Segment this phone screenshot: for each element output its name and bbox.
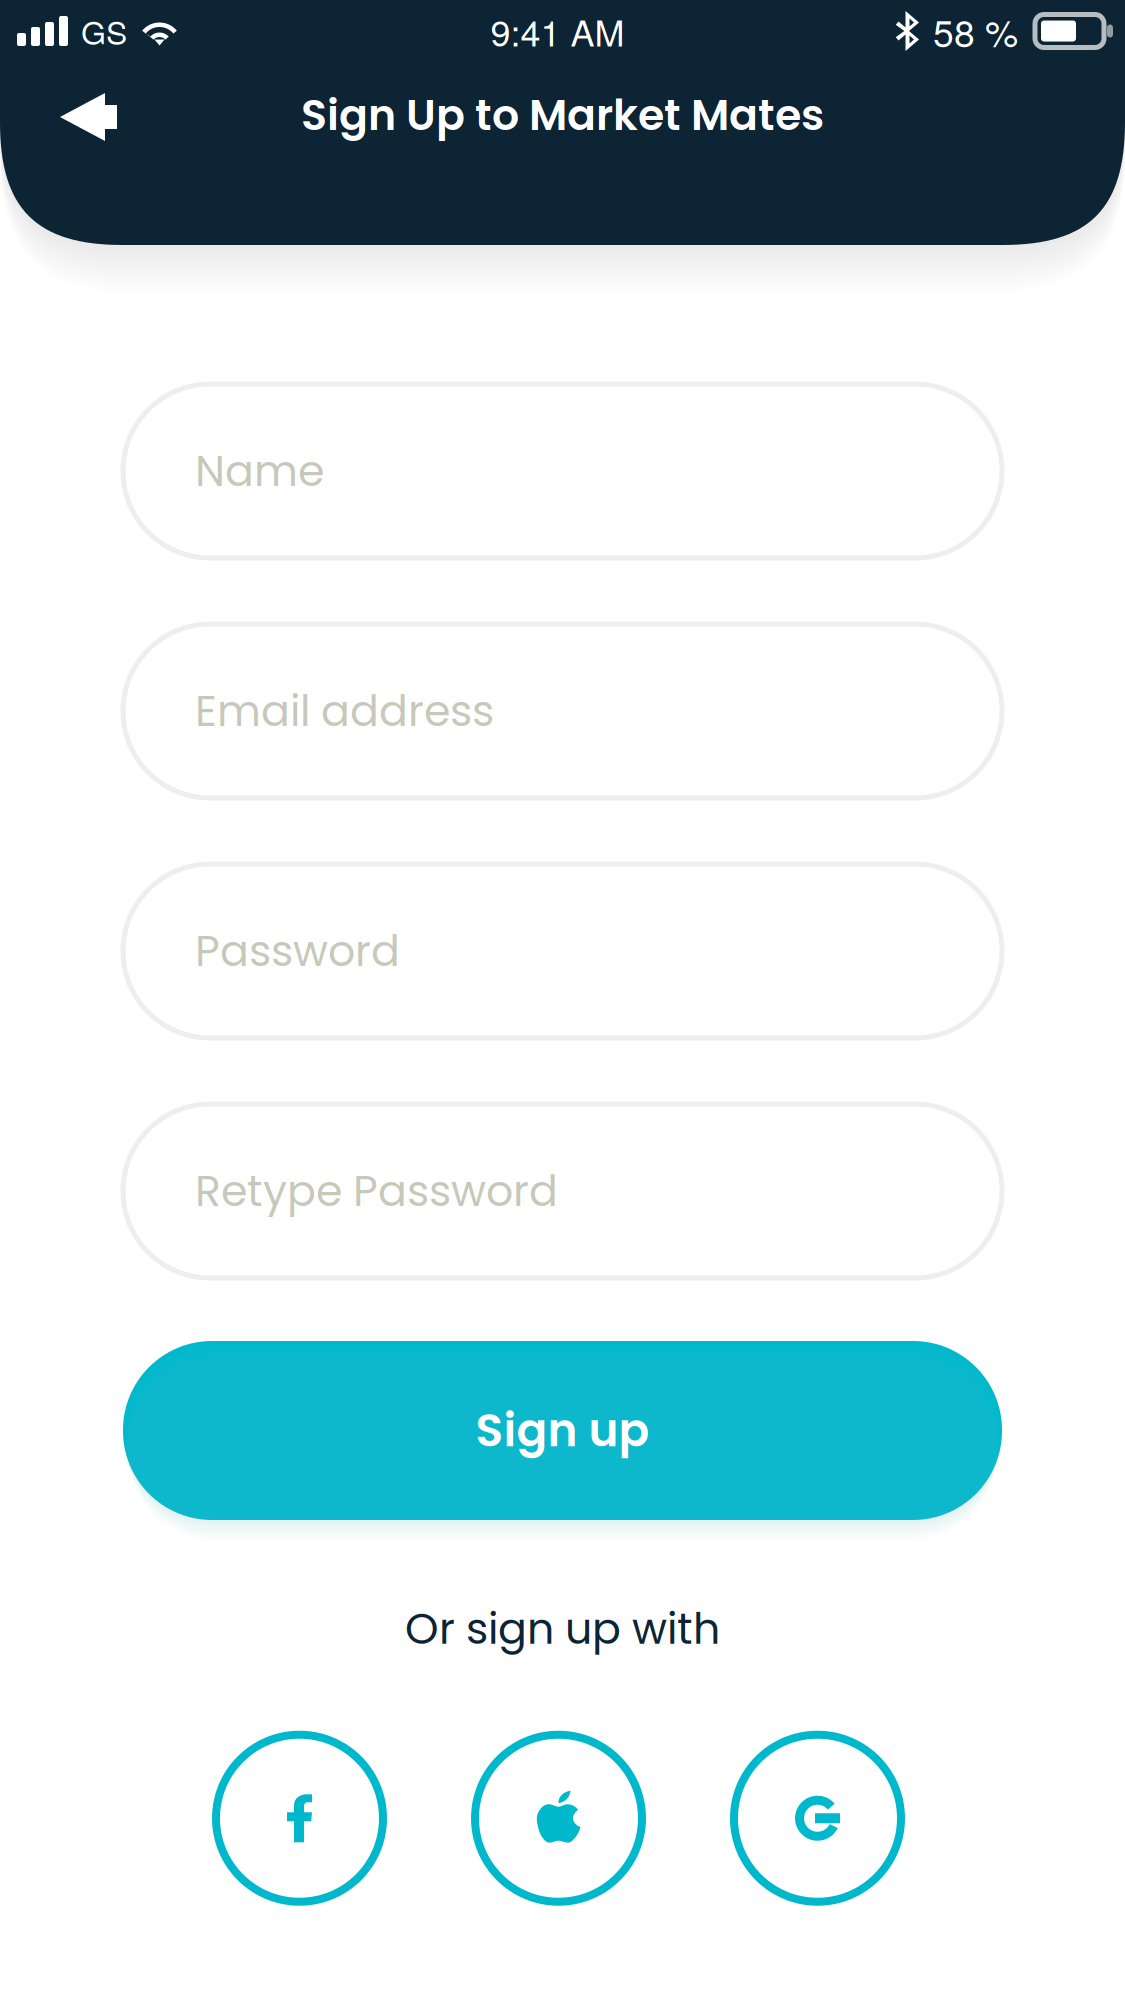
staticText: Sign up xyxy=(475,1399,649,1462)
staticText: Password xyxy=(195,921,400,981)
staticText: GS xyxy=(81,8,127,54)
button[interactable]: Sign up with Apple xyxy=(471,1731,646,1906)
button[interactable]: Sign up xyxy=(123,1341,1002,1520)
button[interactable]: Email address xyxy=(123,624,1002,798)
staticText: Name xyxy=(195,441,324,501)
staticText: Sign Up to Market Mates xyxy=(301,85,824,145)
button[interactable]: Name xyxy=(123,384,1002,558)
button[interactable]: Back xyxy=(0,62,157,162)
button[interactable]: Retype Password xyxy=(123,1104,1002,1278)
staticText: Retype Password xyxy=(195,1161,558,1221)
button[interactable]: Sign up with Facebook xyxy=(212,1731,387,1906)
staticText: 58 % xyxy=(933,4,1018,58)
staticText: Or sign up with xyxy=(405,1599,720,1659)
staticText: 9:41 AM xyxy=(490,5,624,57)
button[interactable]: Password xyxy=(123,864,1002,1038)
staticText: Email address xyxy=(195,681,494,741)
button[interactable]: Sign up with Google xyxy=(730,1731,905,1906)
